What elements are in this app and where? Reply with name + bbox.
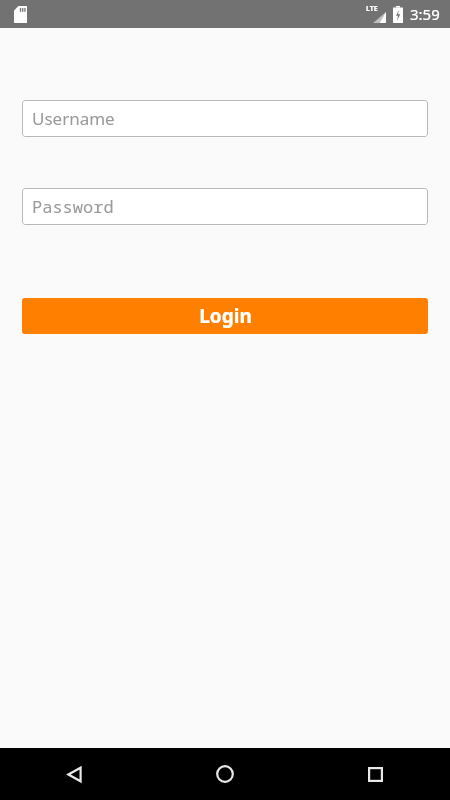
staticText: LTE: [366, 4, 378, 14]
button[interactable]: Password: [22, 188, 428, 225]
staticText: 3:59: [410, 4, 440, 24]
button[interactable]: Back: [51, 750, 99, 798]
button[interactable]: Login: [22, 298, 428, 334]
staticText: Password: [32, 195, 114, 218]
staticText: Username: [32, 107, 115, 130]
button[interactable]: Username: [22, 100, 428, 137]
button[interactable]: Recent apps: [351, 750, 399, 798]
button[interactable]: Home: [201, 750, 249, 798]
staticText: Login: [199, 303, 252, 329]
